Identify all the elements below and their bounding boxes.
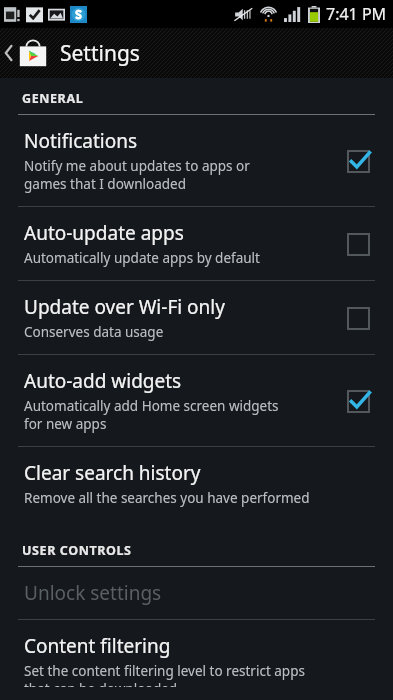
button[interactable]: Checked [343, 386, 373, 416]
staticText: Update over Wi-Fi only [24, 294, 225, 320]
button[interactable]: Content filtering [0, 620, 393, 700]
button[interactable]: Checked [343, 146, 373, 176]
staticText: 7:41 PM [326, 3, 387, 25]
staticText: Set the content filtering level to restr… [24, 662, 305, 687]
staticText: Auto-add widgets [24, 368, 182, 394]
staticText: Remove all the searches you have perform… [24, 489, 310, 507]
button: Unlock settings [0, 567, 393, 619]
button[interactable]: Auto-update apps [0, 207, 393, 280]
staticText: Automatically update apps by default [24, 249, 260, 267]
button[interactable]: Unchecked [343, 229, 373, 259]
staticText: Notify me about updates to apps or games… [24, 157, 250, 193]
staticText: Notifications [24, 128, 138, 154]
staticText: Automatically add Home screen widgets fo… [24, 397, 279, 433]
staticText: Content filtering [24, 633, 171, 659]
staticText: USER CONTROLS [22, 542, 132, 559]
staticText: Auto-update apps [24, 220, 184, 246]
button[interactable]: Back to Play Store [0, 28, 393, 78]
staticText: Conserves data usage [24, 323, 164, 341]
button[interactable]: Update over Wi-Fi only [0, 281, 393, 354]
staticText: Settings [60, 39, 140, 68]
button[interactable]: Auto-add widgets [0, 355, 393, 446]
button[interactable]: Unchecked [343, 303, 373, 333]
staticText: Unlock settings [24, 580, 162, 606]
staticText: Clear search history [24, 460, 201, 486]
button[interactable]: Notifications [0, 115, 393, 206]
button[interactable]: Clear search history [0, 447, 393, 520]
staticText: GENERAL [22, 90, 84, 107]
